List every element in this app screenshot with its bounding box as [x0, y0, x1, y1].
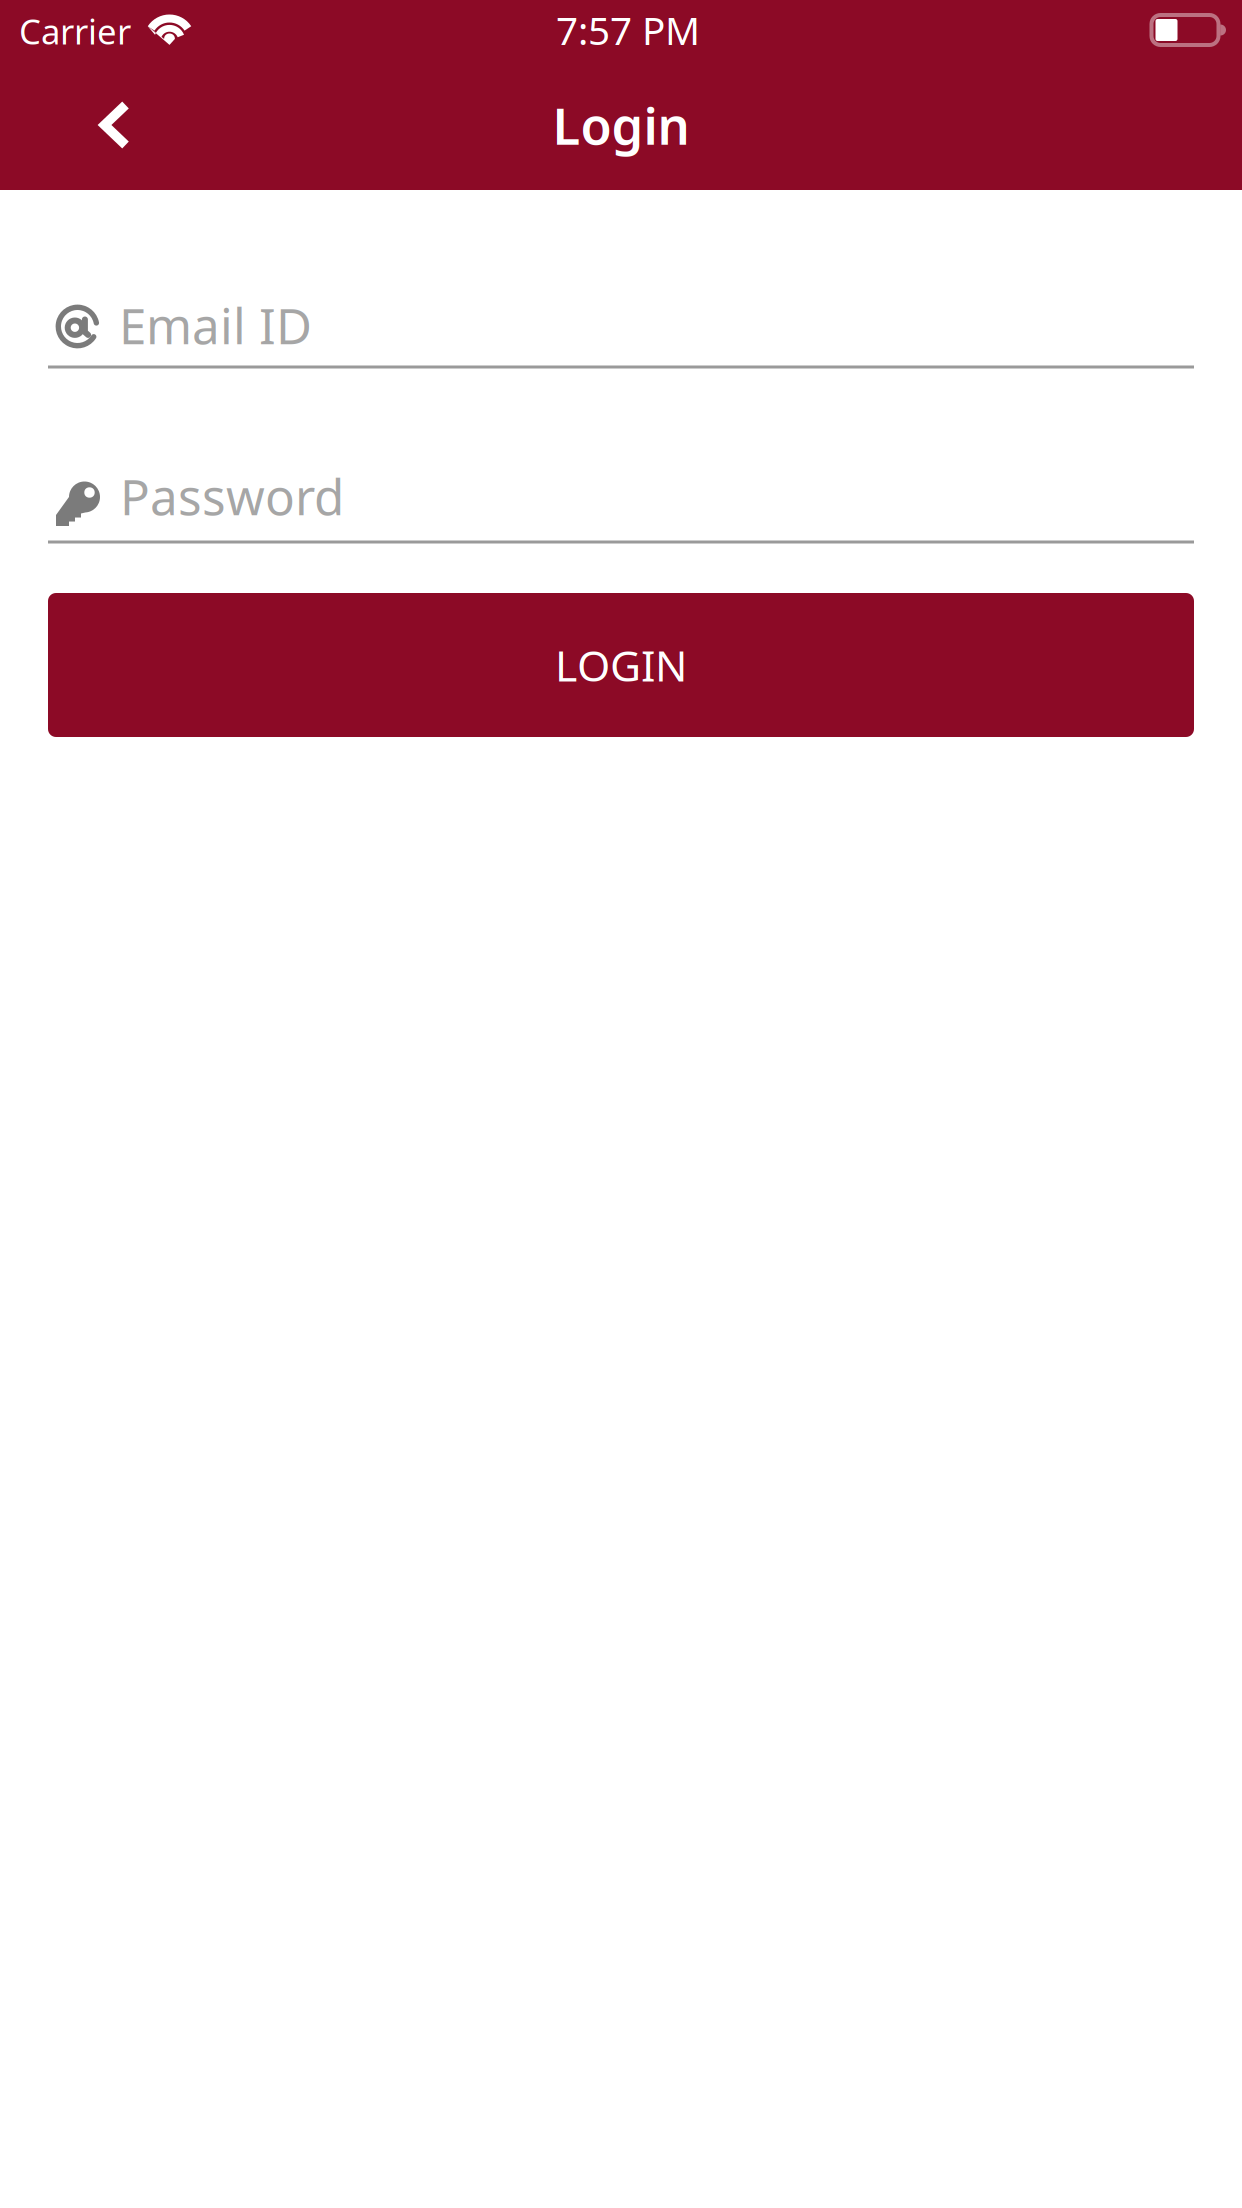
staticText: LOGIN: [555, 637, 687, 693]
staticText: 7:57 PM: [556, 4, 700, 56]
button[interactable]: Email ID: [48, 283, 1194, 373]
staticText: Email ID: [119, 292, 312, 358]
button[interactable]: Back: [59, 65, 171, 185]
staticText: Password: [120, 463, 344, 529]
button[interactable]: Password: [48, 453, 1194, 543]
staticText: Login: [552, 91, 689, 159]
staticText: Carrier: [19, 8, 131, 54]
button[interactable]: LOGIN: [48, 593, 1194, 737]
